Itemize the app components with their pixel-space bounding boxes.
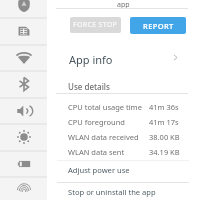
button[interactable]: Brightness	[0, 123, 47, 150]
button[interactable]: Adjust power use	[47, 161, 200, 182]
button[interactable]: SIM card	[0, 17, 47, 44]
staticText: 41m 17s	[149, 117, 179, 127]
staticText: 34.19 KB	[149, 147, 180, 157]
staticText: App info	[69, 52, 113, 67]
staticText: 38.00 KB	[149, 132, 180, 142]
button[interactable]: Battery	[0, 150, 47, 177]
staticText: REPORT	[143, 21, 174, 31]
button[interactable]: FORCE STOP	[70, 17, 121, 33]
staticText: WLAN data received	[68, 132, 139, 142]
staticText: Stop or uninstall the app	[68, 187, 156, 197]
staticText: FORCE STOP	[73, 20, 118, 30]
staticText: CPU total usage time	[68, 102, 142, 112]
staticText: 41m 36s	[149, 102, 179, 112]
button[interactable]: Wi-Fi	[0, 44, 47, 71]
button[interactable]: Volume	[0, 97, 47, 124]
button[interactable]: Bluetooth	[0, 70, 47, 97]
staticText: Adjust power use	[68, 165, 130, 175]
staticText: app	[117, 0, 130, 8]
staticText: Use details	[68, 81, 110, 92]
button[interactable]: REPORT	[130, 17, 186, 34]
button[interactable]: Fingerprint	[0, 176, 47, 200]
button[interactable]: Security	[0, 0, 47, 18]
staticText: WLAN data sent	[68, 147, 125, 157]
button[interactable]: Stop or uninstall the app	[47, 183, 200, 200]
staticText: CPU foreground	[68, 117, 125, 127]
button[interactable]: App info	[47, 45, 200, 70]
